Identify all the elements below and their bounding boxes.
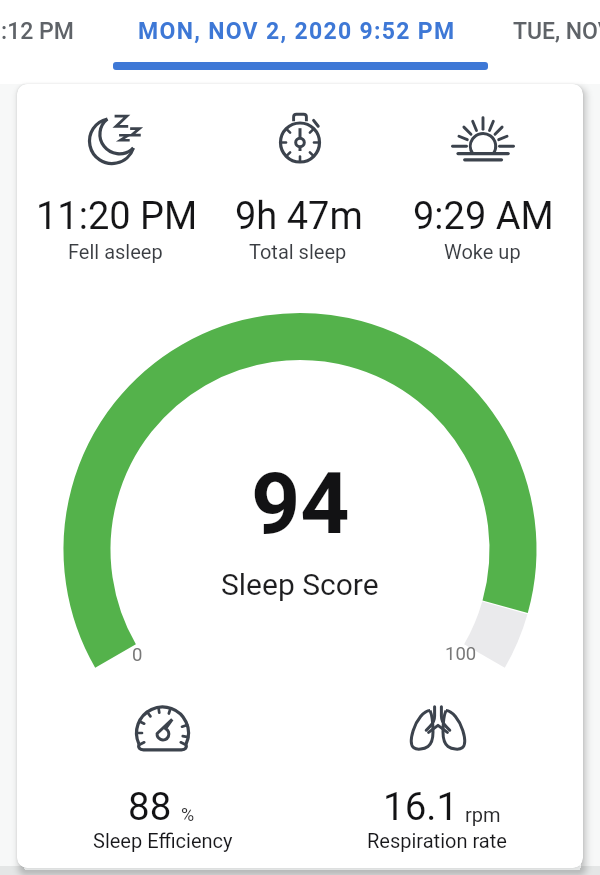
staticText: 9:29 AM: [413, 194, 554, 239]
staticText: 0: [132, 644, 143, 666]
staticText: 11:20 PM: [36, 194, 198, 239]
staticText: Sleep Score: [221, 567, 379, 602]
button[interactable]: 9:12 PM: [0, 5, 123, 58]
staticText: rpm: [465, 803, 501, 826]
staticText: Sleep Efficiency: [93, 829, 233, 852]
staticText: %: [181, 804, 195, 825]
staticText: 100: [445, 643, 477, 665]
staticText: TUE, NOV 3, 2020 9:12: [513, 18, 600, 45]
staticText: 94: [251, 453, 350, 554]
staticText: Woke up: [444, 240, 521, 263]
staticText: 16.1: [383, 784, 459, 829]
staticText: Respiration rate: [367, 829, 507, 852]
staticText: Fell asleep: [68, 240, 163, 263]
staticText: MON, NOV 2, 2020 9:52 PM: [138, 18, 456, 45]
button[interactable]: MON, NOV 2, 2020 9:52 PM: [96, 5, 497, 58]
staticText: 9:12 PM: [0, 18, 74, 45]
staticText: 88: [128, 784, 172, 829]
button[interactable]: TUE, NOV 3, 2020 9:12: [513, 5, 600, 58]
staticText: 9h 47m: [235, 194, 363, 239]
staticText: Total sleep: [249, 240, 347, 263]
